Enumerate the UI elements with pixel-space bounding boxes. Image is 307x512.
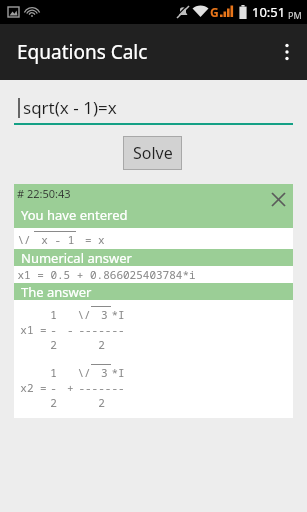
staticText: 1	[50, 365, 57, 380]
button[interactable]: Close	[263, 184, 293, 214]
staticText: -	[50, 380, 57, 395]
staticText: 1	[50, 307, 57, 322]
staticText: Equations Calc	[17, 39, 148, 65]
staticText: \/	[17, 232, 31, 247]
staticText: sqrt(x - 1)=x	[23, 96, 117, 119]
staticText: # 22:50:43	[17, 186, 71, 201]
staticText: *I	[111, 365, 125, 380]
staticText: 2	[50, 337, 57, 352]
staticText: You have entered	[21, 206, 128, 224]
staticText: G	[210, 4, 219, 20]
staticText: x2 =	[17, 380, 50, 395]
staticText: Solve	[133, 142, 173, 164]
staticText: 2	[98, 337, 105, 352]
staticText: Numerical answer	[21, 249, 132, 266]
staticText: x - 1	[31, 232, 78, 247]
staticText: 3	[91, 307, 111, 322]
staticText: *I	[111, 307, 125, 322]
staticText: x1 =	[17, 322, 50, 337]
staticText: \/	[77, 307, 91, 322]
staticText: -	[57, 322, 77, 337]
staticText: -	[50, 322, 57, 337]
staticText: 10:51	[252, 3, 286, 21]
staticText: x1 = 0.5 + 0.866025403784*i	[17, 267, 196, 282]
staticText: 2	[50, 395, 57, 410]
staticText: \/	[77, 365, 91, 380]
button[interactable]: sqrt(x - 1)=x	[14, 92, 293, 123]
button[interactable]: More options	[267, 24, 307, 80]
staticText: +	[57, 380, 77, 395]
staticText: 2	[98, 395, 105, 410]
staticText: -------	[78, 380, 125, 395]
button[interactable]: Solve	[124, 137, 181, 169]
staticText: -------	[78, 322, 125, 337]
staticText: 3	[91, 365, 111, 380]
staticText: The answer	[21, 283, 92, 300]
staticText: = x	[78, 232, 105, 247]
staticText: PM	[288, 9, 302, 21]
